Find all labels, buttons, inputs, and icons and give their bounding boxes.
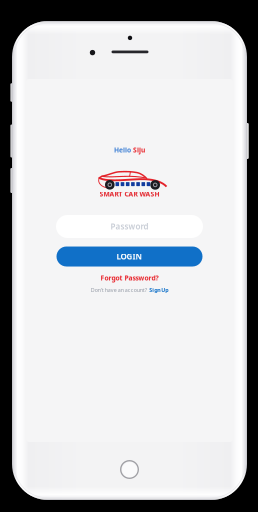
button[interactable]: Forgot Password? xyxy=(100,274,158,282)
staticText: LOGIN xyxy=(116,251,142,262)
staticText: Password xyxy=(110,221,148,232)
staticText: Hello xyxy=(114,146,133,154)
button[interactable]: Sign Up xyxy=(149,286,168,294)
staticText: Siju xyxy=(133,146,145,154)
staticText: SMART CAR WASH xyxy=(99,190,159,198)
button[interactable]: LOGIN xyxy=(56,246,202,266)
staticText: Sign Up xyxy=(149,286,168,294)
staticText: Don't have an account? xyxy=(91,286,147,294)
staticText: Forgot Password? xyxy=(100,274,158,282)
